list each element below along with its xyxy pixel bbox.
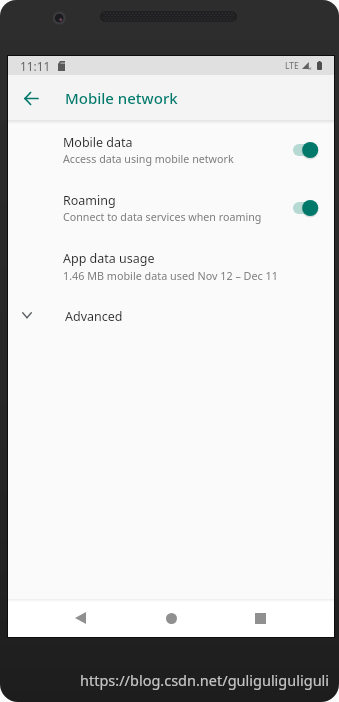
staticText: LTE <box>285 60 299 72</box>
staticText: Mobile network <box>65 88 178 108</box>
staticText: Access data using mobile network <box>63 152 234 167</box>
staticText: 1.46 MB mobile data used Nov 12 – Dec 11 <box>63 268 278 283</box>
button[interactable]: Roaming <box>8 179 334 237</box>
staticText: App data usage <box>63 250 155 267</box>
staticText: https://blog.csdn.net/guliguliguliguli <box>80 670 330 690</box>
staticText: 11:11 <box>20 58 51 74</box>
button[interactable]: App data usage <box>8 237 334 295</box>
staticText: Roaming <box>63 192 116 209</box>
staticText: Mobile data <box>63 134 133 151</box>
button[interactable]: Advanced <box>8 295 334 338</box>
staticText: Connect to data services when roaming <box>63 210 262 225</box>
button[interactable]: Back <box>15 82 47 114</box>
button[interactable]: Recents <box>233 599 288 637</box>
button[interactable]: Home <box>144 599 199 637</box>
button[interactable]: Mobile data <box>8 121 334 179</box>
button[interactable]: Back <box>53 599 108 637</box>
staticText: Advanced <box>65 308 123 325</box>
